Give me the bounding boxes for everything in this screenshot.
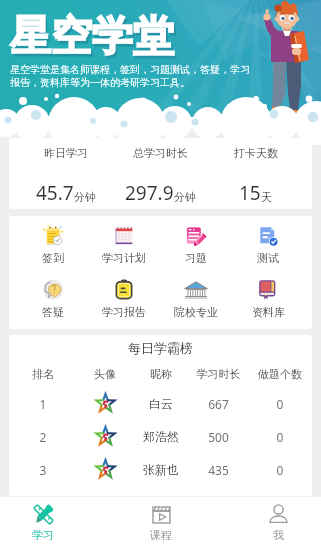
- button[interactable]: 测试: [232, 224, 304, 265]
- staticText: 白云: [133, 396, 189, 411]
- staticText: 45.7: [36, 180, 74, 206]
- staticText: 我: [273, 528, 284, 542]
- staticText: 15: [239, 180, 261, 206]
- staticText: 昨日学习: [44, 146, 88, 160]
- staticText: 星空学堂: [10, 11, 174, 63]
- staticText: 1: [9, 396, 77, 412]
- staticText: 500: [189, 429, 248, 445]
- staticText: 每日学霸榜: [128, 340, 193, 356]
- staticText: 3: [9, 462, 77, 478]
- staticText: 答疑: [42, 305, 64, 319]
- button[interactable]: 总学习时长: [113, 141, 208, 206]
- staticText: 郑浩然: [133, 429, 189, 444]
- staticText: 打卡天数: [234, 146, 278, 160]
- staticText: 签到: [42, 251, 64, 265]
- button[interactable]: 我: [256, 503, 300, 542]
- staticText: 297.9: [125, 180, 174, 206]
- staticText: 头像: [77, 367, 133, 381]
- staticText: 做题个数: [248, 367, 312, 381]
- button[interactable]: 签到: [17, 224, 88, 265]
- button[interactable]: 院校专业: [160, 278, 232, 319]
- button[interactable]: 2: [9, 420, 312, 453]
- staticText: 435: [189, 462, 248, 478]
- staticText: 学习: [32, 528, 54, 542]
- staticText: 2: [9, 429, 77, 445]
- button[interactable]: 1: [9, 387, 312, 420]
- staticText: 课程: [150, 528, 172, 542]
- staticText: 天: [261, 190, 272, 204]
- button[interactable]: 学习计划: [88, 224, 160, 265]
- button[interactable]: 学习报告: [88, 278, 160, 319]
- staticText: 昵称: [133, 367, 189, 381]
- staticText: 分钟: [74, 190, 96, 204]
- button[interactable]: 打卡天数: [208, 141, 303, 206]
- staticText: 院校专业: [174, 305, 218, 319]
- staticText: 0: [248, 396, 312, 412]
- staticText: 学习报告: [102, 305, 146, 319]
- button[interactable]: 昨日学习: [18, 141, 113, 206]
- staticText: 667: [189, 396, 248, 412]
- staticText: 张新也: [133, 462, 189, 477]
- staticText: 资料库: [252, 305, 285, 319]
- button[interactable]: 习题: [160, 224, 232, 265]
- staticText: 星空学堂: [12, 14, 176, 66]
- staticText: 星空学堂是集名师课程，签到，习题测试，答疑，学习 报告，资料库等为一体的考研学习…: [10, 63, 250, 89]
- staticText: 分钟: [174, 190, 196, 204]
- staticText: 学习计划: [102, 251, 146, 265]
- staticText: 0: [248, 462, 312, 478]
- staticText: 学习时长: [189, 367, 248, 381]
- button[interactable]: 资料库: [232, 278, 304, 319]
- button[interactable]: 课程: [139, 503, 183, 542]
- staticText: 习题: [185, 251, 207, 265]
- staticText: 0: [248, 429, 312, 445]
- button[interactable]: 学习: [21, 503, 65, 542]
- staticText: 测试: [257, 251, 279, 265]
- button[interactable]: 答疑: [17, 278, 88, 319]
- staticText: 排名: [9, 367, 77, 381]
- button[interactable]: 3: [9, 453, 312, 486]
- staticText: 总学习时长: [133, 146, 188, 160]
